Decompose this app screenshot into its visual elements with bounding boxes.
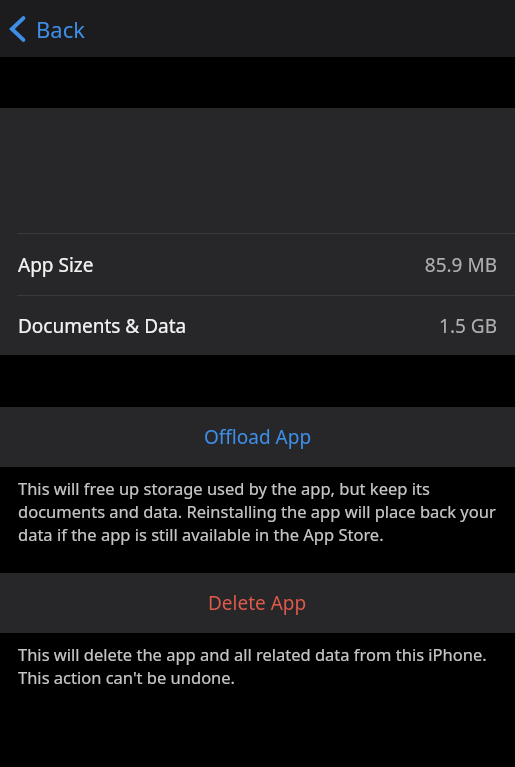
staticText: This will free up storage used by the ap… bbox=[18, 477, 497, 546]
staticText: Documents & Data bbox=[18, 313, 187, 339]
button[interactable]: App Size bbox=[0, 234, 515, 295]
staticText: This will delete the app and all related… bbox=[18, 643, 497, 689]
staticText: Back bbox=[36, 14, 85, 44]
staticText: 85.9 MB bbox=[424, 252, 497, 278]
staticText: 1.5 GB bbox=[439, 313, 497, 339]
button[interactable]: Documents & Data bbox=[0, 296, 515, 355]
staticText: Delete App bbox=[208, 590, 307, 616]
button[interactable]: Offload App bbox=[0, 407, 515, 467]
staticText: Offload App bbox=[204, 424, 312, 450]
button[interactable]: Delete App bbox=[0, 573, 515, 633]
staticText: App Size bbox=[18, 252, 94, 278]
button[interactable]: Back bbox=[7, 10, 93, 48]
